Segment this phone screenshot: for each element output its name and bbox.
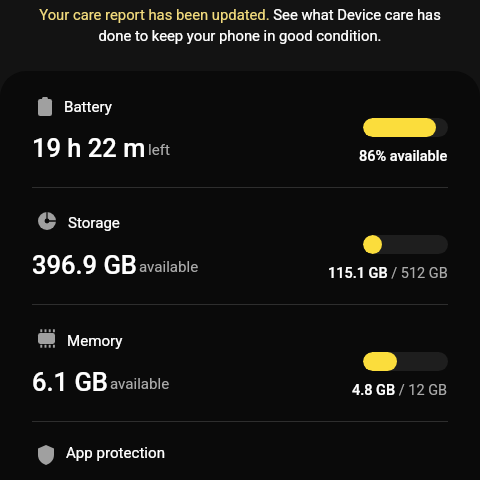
button[interactable]: Battery [0, 71, 480, 187]
button[interactable]: Memory [0, 305, 480, 421]
staticText: Storage [68, 214, 120, 232]
staticText: Your care report has been updated. See w… [29, 6, 451, 44]
staticText: left [148, 141, 170, 159]
staticText: 4.8 GB / 12 GB [352, 382, 448, 399]
button[interactable]: Storage [0, 188, 480, 304]
staticText: 115.1 GB / 512 GB [328, 265, 448, 282]
staticText: available [110, 375, 170, 393]
staticText: Battery [64, 98, 112, 116]
staticText: 86% available [359, 148, 448, 165]
staticText: 19 h 22 m [32, 133, 146, 163]
button[interactable]: App protection [0, 422, 480, 480]
staticText: available [139, 258, 199, 276]
staticText: 396.9 GB [32, 250, 137, 280]
staticText: 6.1 GB [32, 367, 108, 397]
staticText: App protection [66, 444, 165, 462]
staticText: Memory [67, 332, 123, 350]
